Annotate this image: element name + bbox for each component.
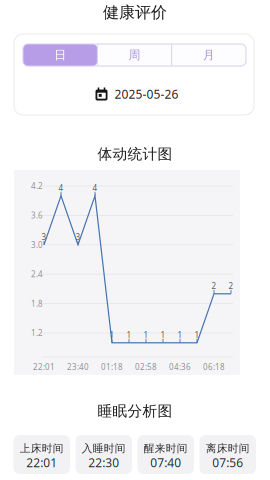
button[interactable]: 2025-05-26 [23, 84, 251, 104]
staticText: 2 [228, 280, 233, 291]
staticText: 1 [143, 329, 148, 340]
staticText: 离床时间 [206, 442, 250, 455]
staticText: 23:40 [67, 362, 89, 372]
staticText: 4.2 [31, 181, 43, 191]
staticText: 07:56 [212, 454, 243, 470]
staticText: 1 [177, 329, 182, 340]
staticText: 1.8 [31, 298, 43, 309]
staticText: 04:36 [169, 362, 191, 372]
staticText: 3 [41, 231, 46, 242]
button[interactable]: 周 [97, 44, 172, 66]
staticText: 3 [75, 231, 80, 242]
staticText: 4 [92, 182, 97, 193]
staticText: 22:01 [26, 454, 57, 470]
staticText: 1 [194, 329, 199, 340]
staticText: 1 [109, 329, 114, 340]
button[interactable]: 日 [23, 44, 97, 66]
staticText: 2 [211, 280, 216, 291]
staticText: 睡眠分析图 [97, 402, 172, 420]
button[interactable]: 月 [172, 44, 246, 66]
staticText: 1 [126, 329, 131, 340]
staticText: 22:30 [88, 454, 119, 470]
staticText: 1.2 [31, 328, 43, 338]
staticText: 01:18 [101, 362, 123, 372]
staticText: 醒来时间 [144, 442, 188, 455]
staticText: 周 [128, 48, 140, 62]
staticText: 健康评价 [103, 3, 167, 22]
staticText: 2.4 [31, 269, 43, 279]
staticText: 1 [160, 329, 165, 340]
staticText: 06:18 [203, 362, 225, 372]
staticText: 4 [58, 182, 63, 193]
staticText: 上床时间 [20, 442, 64, 455]
staticText: 月 [203, 48, 215, 62]
staticText: 2025-05-26 [114, 86, 178, 102]
staticText: 3.6 [31, 210, 43, 221]
staticText: 入睡时间 [82, 442, 126, 455]
staticText: 3.0 [31, 239, 43, 250]
staticText: 22:01 [33, 362, 55, 372]
staticText: 02:58 [135, 362, 157, 372]
staticText: 07:40 [150, 454, 181, 470]
staticText: 体动统计图 [97, 145, 172, 163]
staticText: 日 [54, 48, 66, 62]
